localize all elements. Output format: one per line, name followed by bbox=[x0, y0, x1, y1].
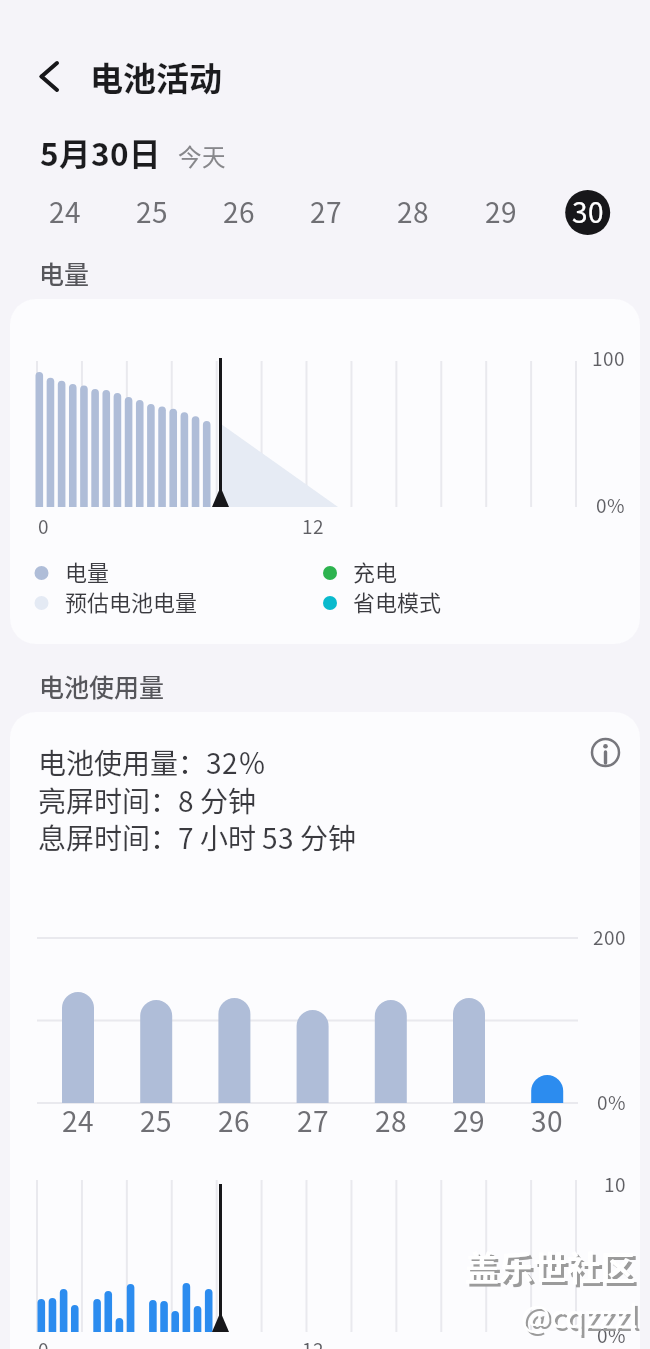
button[interactable] bbox=[473, 186, 529, 240]
button[interactable] bbox=[28, 52, 76, 100]
button[interactable] bbox=[560, 186, 616, 240]
button[interactable] bbox=[124, 186, 180, 240]
button[interactable] bbox=[385, 186, 441, 240]
button[interactable] bbox=[211, 186, 267, 240]
button[interactable] bbox=[583, 730, 629, 776]
button[interactable] bbox=[298, 186, 354, 240]
button[interactable] bbox=[37, 186, 93, 240]
